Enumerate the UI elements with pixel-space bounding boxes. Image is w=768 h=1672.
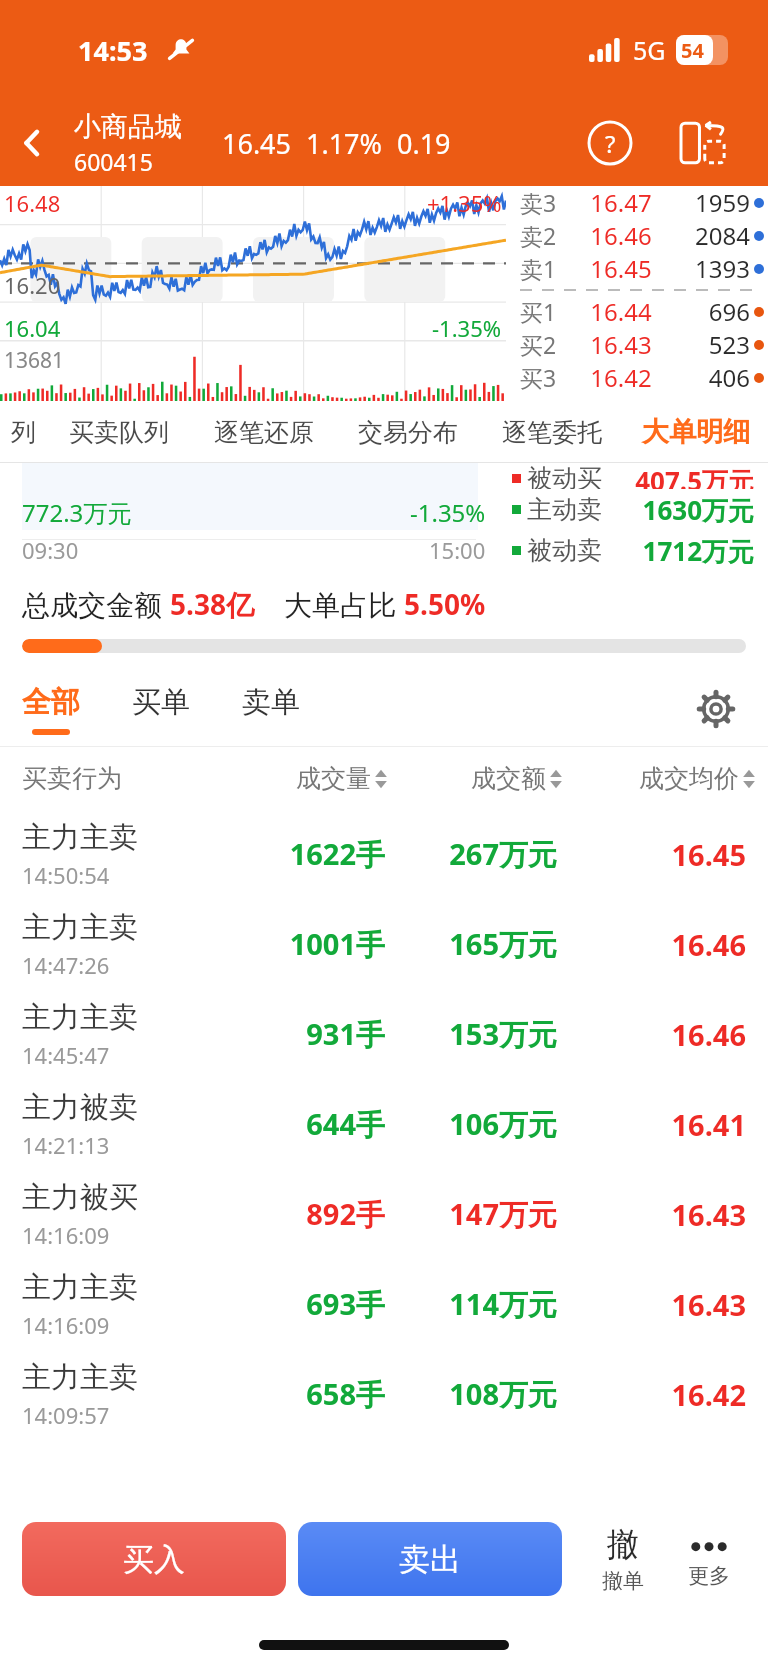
button[interactable]: 主力主卖 <box>0 1259 768 1349</box>
staticText: 16.46 <box>576 219 666 252</box>
button[interactable]: 更多 <box>666 1500 752 1618</box>
button[interactable]: 被动买 <box>500 463 768 489</box>
staticText: 买2 <box>520 329 576 360</box>
staticText: 644手 <box>212 1104 385 1144</box>
staticText: 1001手 <box>212 924 385 964</box>
staticText: 406 <box>666 361 750 394</box>
staticText: 更多 <box>688 1563 730 1589</box>
button[interactable]: 交易分布 <box>336 401 480 463</box>
staticText: 153万元 <box>393 1014 557 1054</box>
staticText: 买单 <box>132 684 190 721</box>
staticText: 14:50:54 <box>22 860 110 890</box>
staticText: 主力主卖 <box>22 819 138 856</box>
button[interactable]: 主力被买 <box>0 1169 768 1259</box>
staticText: 165万元 <box>393 924 557 964</box>
button[interactable]: 买卖队列 <box>46 401 191 463</box>
staticText: 16.43 <box>576 328 666 361</box>
staticText: 买1 <box>520 296 576 327</box>
staticText: 0.19 <box>397 125 451 162</box>
button[interactable]: Settings <box>690 683 742 735</box>
staticText: 16.45 <box>222 125 292 162</box>
staticText: 16.46 <box>557 1015 746 1054</box>
button[interactable]: 买1 <box>506 295 768 328</box>
button[interactable]: 逐笔委托 <box>480 401 624 463</box>
button[interactable]: 逐笔还原 <box>191 401 336 463</box>
staticText: 买入 <box>123 1540 185 1579</box>
staticText: 147万元 <box>393 1194 557 1234</box>
button[interactable]: 卖单 <box>242 684 300 735</box>
staticText: 5.50% <box>404 585 486 623</box>
staticText: 54 <box>681 37 704 64</box>
button[interactable]: 买单 <box>132 684 190 735</box>
staticText: 1959 <box>666 186 750 219</box>
staticText: 被动卖 <box>527 535 602 566</box>
staticText: 09:30 <box>22 535 79 565</box>
staticText: 14:45:47 <box>22 1040 110 1070</box>
button[interactable]: 主动卖 <box>500 489 768 530</box>
button[interactable]: 买入 <box>22 1522 286 1596</box>
staticText: 16.42 <box>557 1375 746 1414</box>
staticText: -1.35% <box>432 313 502 343</box>
staticText: 成交均价 <box>639 763 739 794</box>
button[interactable]: 成交额 <box>388 763 563 794</box>
staticText: 14:47:26 <box>22 950 110 980</box>
staticText: 15:00 <box>429 535 486 565</box>
staticText: 14:21:13 <box>22 1130 110 1160</box>
staticText: 772.3万元 <box>22 496 132 529</box>
button[interactable]: 列 <box>0 401 46 463</box>
staticText: 逐笔委托 <box>502 417 602 448</box>
staticText: 1630万元 <box>602 492 754 528</box>
staticText: 主力被卖 <box>22 1089 138 1126</box>
button[interactable]: 主力主卖 <box>0 989 768 1079</box>
staticText: 总成交金额 <box>22 585 170 623</box>
staticText: 买卖队列 <box>69 417 169 448</box>
button[interactable]: 大单明细 <box>624 401 768 463</box>
staticText: 16.45 <box>557 835 746 874</box>
staticText: 14:16:09 <box>22 1220 110 1250</box>
staticText: 撤 <box>607 1524 639 1564</box>
button[interactable]: 主力主卖 <box>0 1349 768 1439</box>
staticText: 主力主卖 <box>22 909 138 946</box>
staticText: 卖1 <box>520 253 576 284</box>
staticText: 1393 <box>666 252 750 285</box>
staticText: 买卖行为 <box>22 763 212 794</box>
button[interactable]: 买2 <box>506 328 768 361</box>
staticText: 114万元 <box>393 1284 557 1324</box>
staticText: 1712万元 <box>602 533 754 569</box>
staticText: 931手 <box>212 1014 385 1054</box>
button[interactable]: Help <box>580 113 640 173</box>
staticText: 大单占比 <box>284 585 404 623</box>
button[interactable]: 主力主卖 <box>0 899 768 989</box>
button[interactable]: 主力被卖 <box>0 1079 768 1169</box>
staticText: 交易分布 <box>358 417 458 448</box>
button[interactable]: 卖1 <box>506 252 768 285</box>
staticText: 693手 <box>212 1284 385 1324</box>
button[interactable]: 卖3 <box>506 186 768 219</box>
staticText: 16.20 <box>4 270 61 300</box>
staticText: 5G <box>633 33 666 67</box>
staticText: 小商品城 <box>74 110 182 144</box>
staticText: 267万元 <box>393 834 557 874</box>
button[interactable]: 被动卖 <box>500 530 768 571</box>
staticText: 撤单 <box>602 1568 644 1594</box>
staticText: 卖2 <box>520 220 576 251</box>
staticText: 106万元 <box>393 1104 557 1144</box>
button[interactable]: 全部 <box>22 684 80 735</box>
staticText: 13681 <box>4 346 65 375</box>
staticText: 16.04 <box>4 313 61 343</box>
staticText: 407.5万元 <box>602 463 754 489</box>
button[interactable]: 成交均价 <box>563 763 756 794</box>
button[interactable]: Split screen <box>672 112 734 174</box>
button[interactable]: 买3 <box>506 361 768 394</box>
button[interactable]: 主力主卖 <box>0 809 768 899</box>
staticText: 16.47 <box>576 186 666 219</box>
button[interactable]: 卖出 <box>298 1522 562 1596</box>
button[interactable]: 卖2 <box>506 219 768 252</box>
button[interactable]: Back <box>0 111 64 175</box>
staticText: 主力主卖 <box>22 1269 138 1306</box>
staticText: 卖出 <box>399 1540 461 1579</box>
staticText: 买3 <box>520 362 576 393</box>
button[interactable]: 撤 <box>580 1500 666 1618</box>
staticText: 16.46 <box>557 925 746 964</box>
button[interactable]: 成交量 <box>212 763 388 794</box>
